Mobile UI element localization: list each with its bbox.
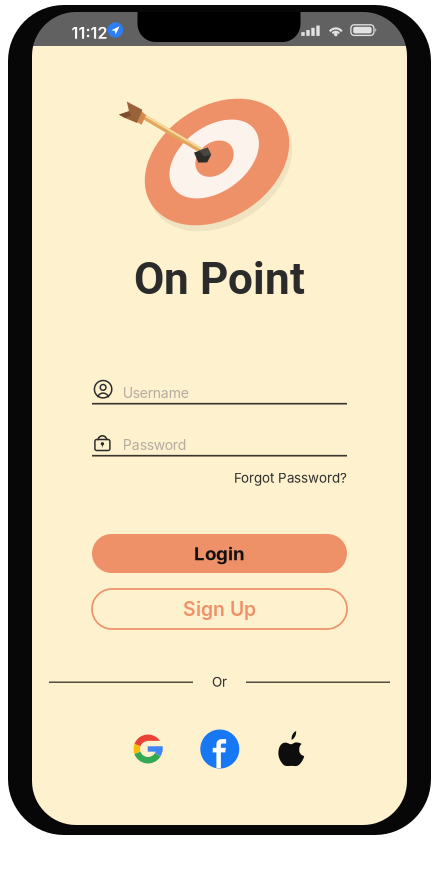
button[interactable]: Forgot Password? [227, 468, 347, 488]
staticText: Or [212, 674, 227, 690]
staticText: Username [123, 384, 189, 401]
button[interactable]: Continue with Apple [277, 731, 306, 767]
button[interactable]: Continue with Google [133, 734, 162, 763]
staticText: Login [194, 542, 245, 565]
staticText: Password [123, 436, 187, 453]
staticText: Sign Up [183, 597, 256, 621]
button[interactable]: Sign Up [92, 589, 347, 629]
button[interactable]: Continue with Facebook [200, 729, 239, 768]
button[interactable]: Login [92, 534, 347, 573]
staticText: On Point [134, 253, 305, 305]
staticText: 11:12 [71, 23, 107, 43]
staticText: Forgot Password? [234, 470, 347, 486]
